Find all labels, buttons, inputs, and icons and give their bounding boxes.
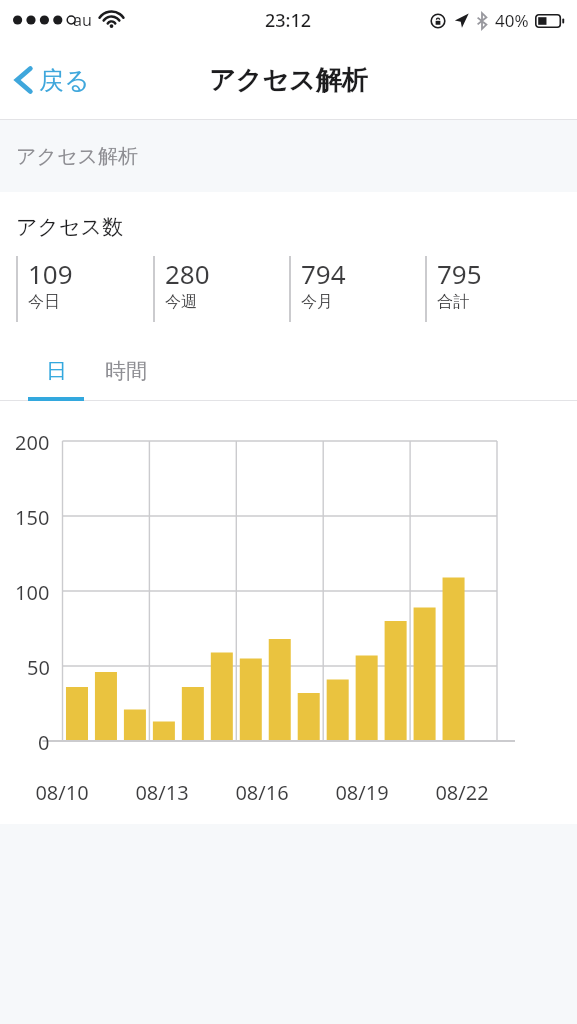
button[interactable]: 時間 [84, 358, 168, 384]
staticText: au [73, 9, 92, 31]
staticText: 今週 [165, 292, 197, 312]
staticText: 794 [301, 256, 346, 291]
staticText: 23:12 [265, 8, 312, 33]
staticText: 08/10 [26, 779, 98, 806]
staticText: 150 [15, 504, 50, 530]
staticText: 合計 [437, 292, 469, 312]
button[interactable]: 戻る [8, 54, 96, 106]
button[interactable]: 日 [28, 358, 84, 384]
staticText: 0 [38, 729, 50, 755]
staticText: 戻る [39, 65, 90, 96]
staticText: 50 [27, 654, 50, 680]
staticText: アクセス解析 [16, 144, 138, 169]
staticText: 08/16 [226, 779, 298, 806]
staticText: 今月 [301, 292, 333, 312]
staticText: 日 [46, 358, 67, 384]
staticText: 今日 [28, 292, 60, 312]
staticText: 100 [15, 579, 50, 605]
staticText: 08/13 [126, 779, 198, 806]
staticText: 40% [495, 9, 529, 32]
staticText: 109 [28, 256, 73, 291]
staticText: 795 [437, 256, 482, 291]
staticText: 08/19 [326, 779, 398, 806]
staticText: アクセス解析 [209, 64, 368, 97]
staticText: 280 [165, 256, 210, 291]
staticText: アクセス数 [16, 214, 123, 240]
staticText: 200 [15, 429, 50, 455]
staticText: 時間 [105, 358, 147, 384]
staticText: 08/22 [426, 779, 498, 806]
